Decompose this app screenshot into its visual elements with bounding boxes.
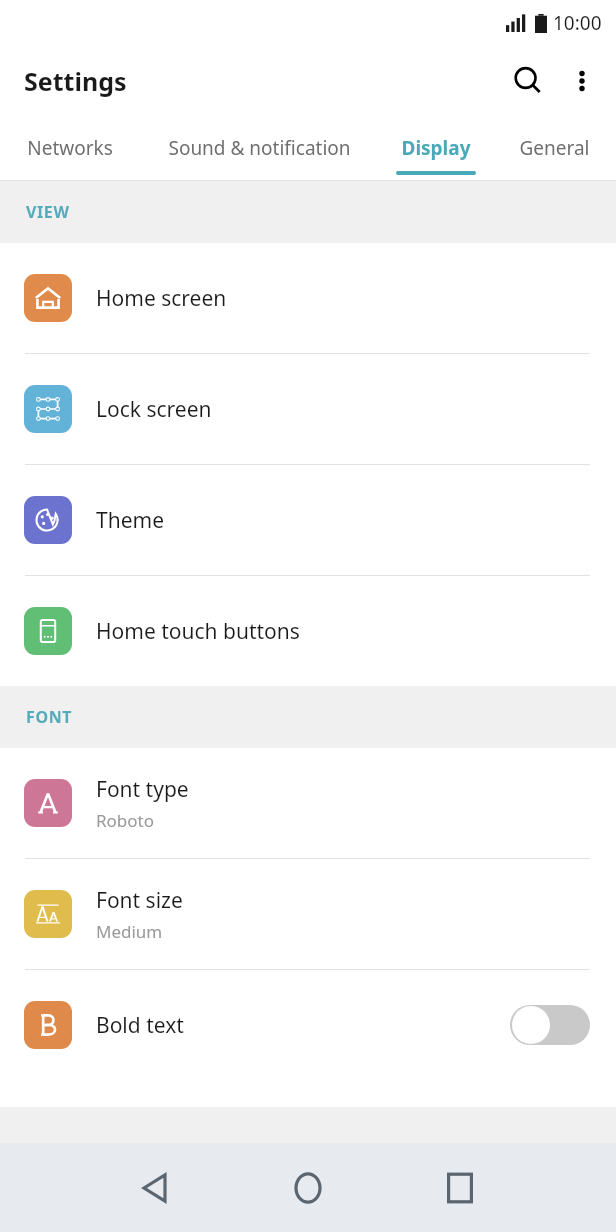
staticText: Settings: [24, 64, 127, 98]
button[interactable]: Theme: [0, 465, 616, 575]
button[interactable]: Search: [500, 53, 556, 109]
staticText: Lock screen: [96, 395, 212, 424]
staticText: Sound & notification: [168, 135, 351, 161]
staticText: FONT: [26, 706, 73, 728]
button[interactable]: Font size: [0, 859, 616, 969]
staticText: Home screen: [96, 284, 227, 313]
button[interactable]: Networks: [0, 116, 139, 180]
button[interactable]: Home touch buttons: [0, 576, 616, 686]
staticText: Theme: [96, 506, 164, 535]
staticText: VIEW: [26, 201, 70, 223]
button[interactable]: Lock screen: [0, 354, 616, 464]
staticText: Home touch buttons: [96, 617, 300, 646]
staticText: Font type: [96, 775, 189, 804]
button[interactable]: General: [493, 116, 616, 180]
staticText: Display: [401, 135, 471, 161]
button[interactable]: Recent apps: [424, 1152, 496, 1224]
staticText: General: [519, 135, 590, 161]
staticText: Font size: [96, 886, 183, 915]
button[interactable]: More options: [556, 55, 608, 107]
staticText: Bold text: [96, 1011, 184, 1040]
button[interactable]: Font type: [0, 748, 616, 858]
button[interactable]: Back: [120, 1152, 192, 1224]
button[interactable]: Home screen: [0, 243, 616, 353]
staticText: 10:00: [553, 10, 602, 36]
button[interactable]: Bold text: [0, 970, 616, 1080]
button[interactable]: Sound & notification: [139, 116, 379, 180]
button[interactable]: Display: [379, 116, 493, 180]
staticText: Networks: [27, 135, 113, 161]
staticText: Roboto: [96, 809, 155, 832]
button[interactable]: Bold text toggle: [510, 1004, 590, 1046]
staticText: Medium: [96, 920, 163, 943]
button[interactable]: Home: [272, 1152, 344, 1224]
